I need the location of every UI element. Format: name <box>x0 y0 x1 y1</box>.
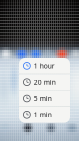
staticText: 20 min <box>34 78 56 87</box>
button[interactable]: 5 min <box>19 91 70 106</box>
button[interactable]: 1 min <box>19 107 70 123</box>
staticText: 1 hour <box>34 61 55 70</box>
staticText: 1 min <box>34 110 52 119</box>
button[interactable]: 1 hour <box>19 58 70 74</box>
staticText: 5 min <box>34 94 52 103</box>
button[interactable]: 20 min <box>19 74 70 90</box>
